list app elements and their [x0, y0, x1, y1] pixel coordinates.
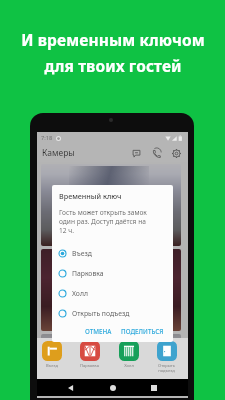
- button[interactable]: Settings: [169, 146, 183, 160]
- staticText: Холл: [72, 289, 88, 298]
- staticText: И временным ключом: [21, 29, 205, 50]
- button[interactable]: Парковка: [76, 341, 103, 369]
- button[interactable]: Открыть подъезд: [153, 341, 180, 373]
- button[interactable]: ПОДЕЛИТЬСЯ: [118, 325, 167, 338]
- button[interactable]: Открыть подъезд: [58, 303, 167, 323]
- staticText: Парковка: [72, 269, 104, 278]
- button[interactable]: Chat: [129, 146, 143, 160]
- staticText: Въезд: [46, 363, 58, 369]
- staticText: Открыть подъезд: [158, 363, 175, 373]
- staticText: Временный ключ: [59, 191, 122, 201]
- staticText: Камеры: [42, 147, 75, 159]
- staticText: 7:18: [41, 134, 53, 142]
- staticText: Парковка: [80, 363, 99, 369]
- button[interactable]: ОТМЕНА: [82, 325, 115, 338]
- button[interactable]: Въезд: [58, 243, 167, 263]
- staticText: Гость может открыть замок один раз. Дост…: [59, 208, 151, 235]
- button[interactable]: Холл: [58, 283, 167, 303]
- button[interactable]: Call: [149, 146, 163, 160]
- button[interactable]: Холл: [115, 341, 142, 369]
- button[interactable]: Въезд: [38, 341, 65, 369]
- staticText: ОТМЕНА: [85, 327, 112, 336]
- staticText: Холл: [124, 363, 134, 369]
- button[interactable]: Home: [106, 381, 120, 395]
- staticText: Въезд: [72, 249, 92, 258]
- staticText: Открыть подъезд: [72, 309, 130, 318]
- button[interactable]: Парковка: [58, 263, 167, 283]
- staticText: ПОДЕЛИТЬСЯ: [121, 327, 164, 336]
- staticText: для твоих гостей: [44, 55, 182, 76]
- button[interactable]: Back: [64, 381, 78, 395]
- button[interactable]: Recents: [147, 381, 161, 395]
